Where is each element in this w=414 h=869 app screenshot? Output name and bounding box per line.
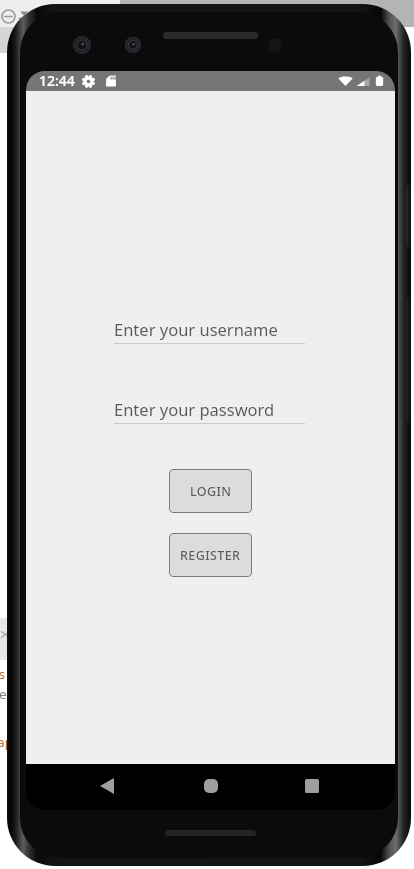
button[interactable]: LOGIN xyxy=(169,469,252,513)
staticText: 12:44 xyxy=(39,71,75,90)
staticText: Enter your password xyxy=(114,398,275,420)
button[interactable]: REGISTER xyxy=(169,533,252,577)
button[interactable]: Recent apps xyxy=(289,764,335,809)
button[interactable]: Enter your username xyxy=(114,318,305,344)
button[interactable]: Home xyxy=(187,764,235,809)
button[interactable]: Enter your password xyxy=(114,398,305,424)
staticText: LOGIN xyxy=(190,483,232,500)
staticText: Enter your username xyxy=(114,318,278,340)
button[interactable]: Back xyxy=(84,764,129,809)
staticText: REGISTER xyxy=(180,547,241,564)
staticText: e xyxy=(0,685,7,703)
staticText: ap xyxy=(0,733,13,751)
staticText: ss xyxy=(0,665,14,683)
